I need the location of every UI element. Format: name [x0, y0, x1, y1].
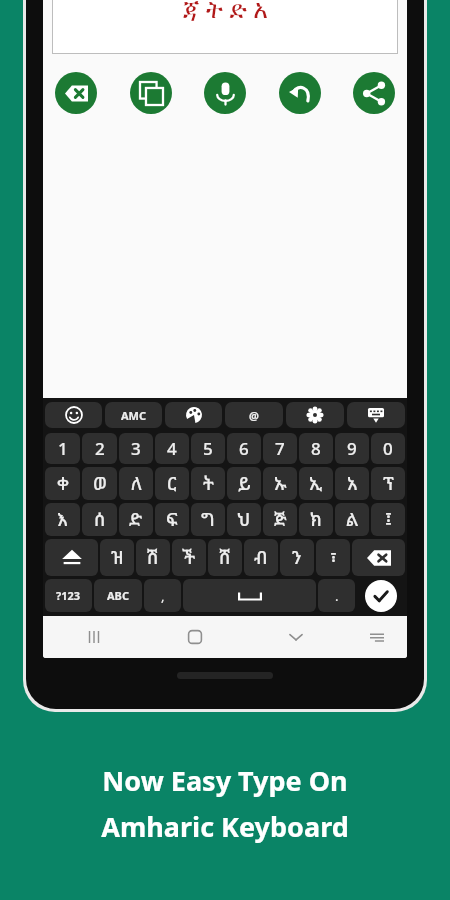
button[interactable]: Share: [353, 72, 395, 114]
staticText: 6: [239, 437, 249, 460]
button[interactable]: Shift: [45, 539, 98, 576]
staticText: ኢ: [309, 471, 323, 496]
button[interactable]: ሸ: [208, 539, 242, 576]
staticText: ABC: [107, 588, 129, 603]
button[interactable]: Menu: [346, 616, 407, 658]
button[interactable]: 7: [263, 433, 297, 464]
staticText: 0: [383, 437, 393, 460]
staticText: 9: [347, 437, 357, 460]
button[interactable]: ብ: [244, 539, 278, 576]
button[interactable]: ፣: [316, 539, 350, 576]
staticText: ህ: [237, 507, 251, 532]
staticText: ች: [182, 545, 196, 570]
button[interactable]: 8: [299, 433, 333, 464]
button[interactable]: Emoji: [45, 402, 102, 428]
staticText: ን: [292, 545, 302, 570]
button[interactable]: AMC: [105, 402, 162, 428]
button[interactable]: 9: [335, 433, 369, 464]
button[interactable]: እ: [45, 503, 80, 536]
button[interactable]: ጃ ት ድ አ: [52, 0, 398, 54]
button[interactable]: Delete: [55, 72, 97, 114]
button[interactable]: Home: [144, 616, 245, 658]
staticText: ሰ: [94, 507, 106, 532]
button[interactable]: ት: [191, 467, 225, 500]
button[interactable]: ር: [155, 467, 189, 500]
staticText: Amharic Keyboard: [101, 808, 349, 845]
button[interactable]: ን: [280, 539, 314, 576]
staticText: ,: [161, 587, 165, 605]
staticText: 5: [203, 437, 213, 460]
staticText: ፣: [330, 545, 337, 570]
staticText: 1: [58, 437, 68, 460]
staticText: ፤: [385, 507, 392, 532]
button[interactable]: Settings: [286, 402, 344, 428]
staticText: ጃ ት ድ አ: [183, 0, 268, 25]
button[interactable]: @: [225, 402, 283, 428]
button[interactable]: አ: [335, 467, 369, 500]
button[interactable]: Theme: [165, 402, 222, 428]
staticText: ?123: [56, 588, 81, 603]
staticText: ድ: [129, 507, 143, 532]
button[interactable]: .: [318, 579, 355, 612]
button[interactable]: 5: [191, 433, 225, 464]
button[interactable]: ለ: [119, 467, 153, 500]
button[interactable]: ኢ: [299, 467, 333, 500]
button[interactable]: ክ: [299, 503, 333, 536]
staticText: ብ: [254, 545, 268, 570]
staticText: ለ: [131, 471, 142, 496]
button[interactable]: ?123: [45, 579, 92, 612]
button[interactable]: Back: [245, 616, 346, 658]
button[interactable]: ABC: [94, 579, 142, 612]
button[interactable]: 0: [371, 433, 405, 464]
staticText: ጅ: [274, 507, 287, 532]
button[interactable]: ቀ: [45, 467, 80, 500]
staticText: 2: [95, 437, 105, 460]
button[interactable]: 1: [45, 433, 80, 464]
staticText: ሸ: [219, 545, 231, 570]
staticText: ፍ: [166, 507, 178, 532]
staticText: Now Easy Type On: [102, 762, 348, 799]
button[interactable]: ኡ: [263, 467, 297, 500]
button[interactable]: ሽ: [136, 539, 170, 576]
button[interactable]: Space: [183, 579, 316, 612]
staticText: ክ: [310, 507, 322, 532]
button[interactable]: ች: [172, 539, 206, 576]
button[interactable]: Backspace: [352, 539, 405, 576]
button[interactable]: Copy: [130, 72, 172, 114]
button[interactable]: 3: [119, 433, 153, 464]
staticText: ሽ: [147, 545, 159, 570]
staticText: ግ: [201, 507, 215, 532]
button[interactable]: 4: [155, 433, 189, 464]
button[interactable]: Recents: [43, 616, 144, 658]
button[interactable]: ፍ: [155, 503, 189, 536]
button[interactable]: Enter: [365, 580, 397, 612]
button[interactable]: 2: [82, 433, 117, 464]
button[interactable]: 6: [227, 433, 261, 464]
button[interactable]: ል: [335, 503, 369, 536]
staticText: አ: [347, 471, 358, 496]
staticText: AMC: [121, 408, 147, 423]
button[interactable]: ድ: [119, 503, 153, 536]
button[interactable]: ጅ: [263, 503, 297, 536]
staticText: ወ: [93, 471, 107, 496]
button[interactable]: ይ: [227, 467, 261, 500]
button[interactable]: Voice input: [204, 72, 246, 114]
staticText: 7: [275, 437, 285, 460]
button[interactable]: ፕ: [371, 467, 405, 500]
button[interactable]: ፤: [371, 503, 405, 536]
staticText: @: [249, 408, 259, 423]
button[interactable]: Undo: [279, 72, 321, 114]
staticText: ቀ: [57, 471, 69, 496]
button[interactable]: ,: [144, 579, 181, 612]
staticText: ር: [167, 471, 177, 496]
staticText: .: [335, 587, 339, 605]
staticText: 8: [311, 437, 321, 460]
button[interactable]: ህ: [227, 503, 261, 536]
button[interactable]: ወ: [82, 467, 117, 500]
button[interactable]: ግ: [191, 503, 225, 536]
button[interactable]: ሰ: [82, 503, 117, 536]
button[interactable]: Hide keyboard: [347, 402, 405, 428]
button[interactable]: ዝ: [100, 539, 134, 576]
staticText: እ: [57, 507, 68, 532]
staticText: ፕ: [383, 471, 394, 496]
